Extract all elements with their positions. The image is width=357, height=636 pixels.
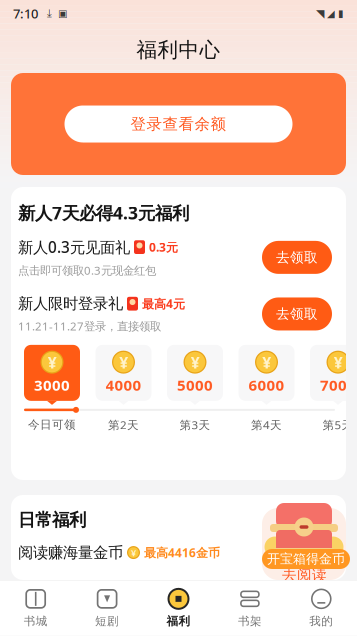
- staticText: 最高4元: [142, 295, 185, 312]
- staticText: 书架: [238, 614, 262, 628]
- button[interactable]: 去领取: [262, 241, 332, 274]
- staticText: 11.21-11.27登录，直接领取: [18, 318, 161, 334]
- staticText: 新人0.3元见面礼: [18, 237, 130, 257]
- button[interactable]: 短剧: [71, 588, 143, 628]
- staticText: 阅读赚海量金币: [18, 543, 123, 562]
- staticText: 3000: [34, 375, 70, 395]
- staticText: ¥: [131, 546, 136, 559]
- button[interactable]: 开宝箱得金币: [262, 549, 350, 569]
- staticText: 书城: [24, 614, 48, 628]
- staticText: 去阅读: [282, 566, 327, 584]
- staticText: 最高4416金币: [144, 544, 220, 561]
- staticText: 第3天: [179, 417, 210, 433]
- staticText: ▣: [58, 8, 67, 19]
- staticText: ◥: [316, 7, 324, 20]
- staticText: ◢: [324, 8, 338, 19]
- button[interactable]: 登录查看余额: [11, 73, 346, 175]
- button[interactable]: 书城: [0, 588, 71, 628]
- staticText: 新人限时登录礼: [18, 294, 123, 313]
- staticText: 4000: [105, 375, 141, 395]
- staticText: 登录查看余额: [130, 114, 226, 134]
- staticText: 7000: [320, 375, 356, 395]
- button[interactable]: 去领取: [262, 297, 332, 330]
- staticText: ¥: [119, 351, 128, 373]
- staticText: 5000: [177, 375, 213, 395]
- staticText: 第5天: [322, 417, 353, 433]
- staticText: ¥: [333, 351, 342, 373]
- button[interactable]: 福利: [143, 588, 214, 628]
- staticText: ⤓: [38, 8, 58, 19]
- staticText: ¥: [262, 351, 271, 373]
- staticText: 新人7天必得4.3元福利: [18, 201, 189, 225]
- staticText: 日常福利: [18, 509, 86, 531]
- staticText: 6000: [248, 375, 284, 395]
- staticText: 福利: [166, 614, 190, 628]
- staticText: 福利中心: [136, 37, 220, 63]
- staticText: 开宝箱得金币: [267, 551, 345, 567]
- staticText: 今日可领: [28, 417, 76, 432]
- staticText: 第4天: [251, 417, 282, 433]
- button[interactable]: 书架: [214, 588, 286, 628]
- staticText: 0.3元: [149, 239, 178, 255]
- staticText: ▮: [338, 8, 344, 19]
- staticText: ¥: [47, 351, 56, 373]
- staticText: 我的: [309, 614, 333, 628]
- staticText: ¥: [190, 351, 199, 373]
- button[interactable]: 我的: [286, 588, 357, 628]
- staticText: 去领取: [276, 249, 318, 266]
- staticText: 短剧: [95, 614, 119, 628]
- staticText: 第2天: [108, 417, 139, 433]
- staticText: 点击即可领取0.3元现金红包: [18, 262, 156, 278]
- staticText: 去领取: [276, 305, 318, 322]
- staticText: 7:10: [13, 5, 38, 22]
